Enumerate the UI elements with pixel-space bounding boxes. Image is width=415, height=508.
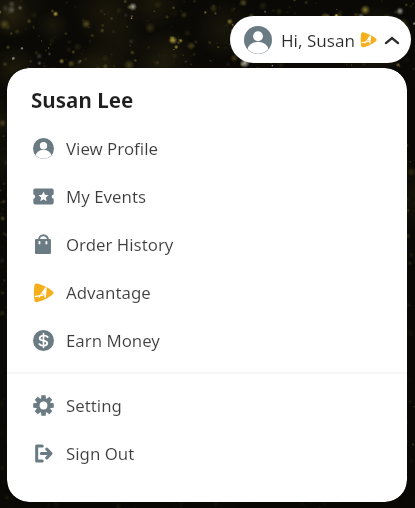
staticText: Advantage	[66, 281, 151, 304]
button[interactable]: Sign Out	[7, 429, 407, 477]
button[interactable]: Setting	[7, 381, 407, 429]
button[interactable]: Earn Money	[7, 316, 407, 364]
button[interactable]: View Profile	[7, 124, 407, 172]
button[interactable]: My Events	[7, 172, 407, 220]
other: Collapse menu	[384, 33, 400, 49]
staticText: Order History	[66, 233, 174, 256]
button[interactable]: Order History	[7, 220, 407, 268]
staticText: My Events	[66, 185, 147, 208]
button[interactable]: Advantage	[7, 268, 407, 316]
staticText: Hi, Susan	[281, 29, 355, 52]
staticText: Susan Lee	[31, 86, 134, 114]
staticText: Earn Money	[66, 329, 160, 352]
staticText: Setting	[66, 394, 122, 417]
staticText: View Profile	[66, 137, 158, 160]
staticText: Sign Out	[66, 442, 135, 465]
button[interactable]: Hi, Susan	[230, 16, 411, 63]
